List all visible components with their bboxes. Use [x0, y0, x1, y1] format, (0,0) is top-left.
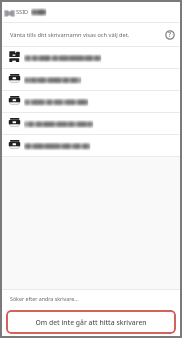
- button[interactable]: Hjälp: [163, 28, 177, 42]
- staticText: Vänta tills ditt skrivarnamn visas och v…: [10, 31, 163, 39]
- button[interactable]: [2, 113, 180, 134]
- staticText: Söker efter andra skrivare...: [10, 295, 79, 302]
- button[interactable]: SSID: [2, 2, 180, 22]
- staticText: ?: [168, 30, 172, 40]
- button[interactable]: [2, 135, 180, 156]
- button[interactable]: [2, 69, 180, 90]
- staticText: SSID: [16, 8, 29, 16]
- button[interactable]: [2, 47, 180, 68]
- staticText: Om det inte går att hitta skrivaren: [35, 318, 147, 327]
- button[interactable]: [2, 91, 180, 112]
- button[interactable]: Om det inte går att hitta skrivaren: [6, 310, 176, 334]
